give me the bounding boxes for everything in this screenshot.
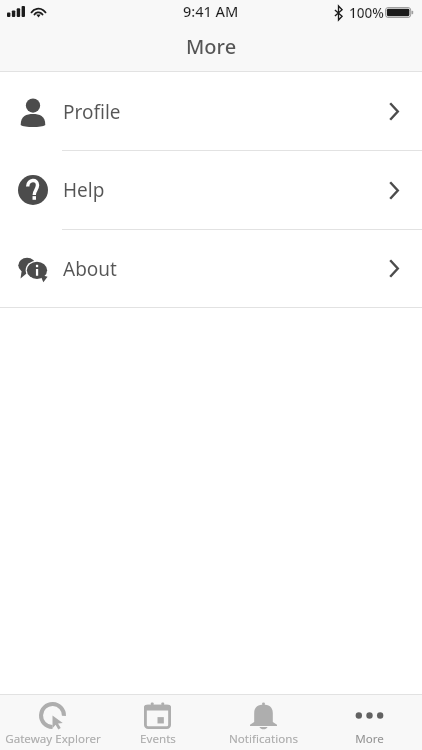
staticText: Gateway Explorer [5, 731, 101, 747]
button[interactable]: Events [105, 695, 210, 750]
staticText: 9:41 AM [183, 1, 239, 21]
staticText: Events [140, 731, 176, 747]
button[interactable]: Help [0, 151, 422, 229]
button[interactable]: More [316, 695, 422, 750]
staticText: More [355, 731, 384, 747]
staticText: About [63, 256, 117, 282]
button[interactable]: Gateway Explorer [0, 695, 105, 750]
button[interactable]: About [0, 229, 422, 308]
button[interactable]: Profile [0, 72, 422, 151]
staticText: Notifications [229, 731, 298, 747]
staticText: Help [63, 177, 105, 203]
staticText: More [186, 33, 237, 60]
staticText: 100% [349, 3, 384, 22]
staticText: Profile [63, 99, 121, 125]
button[interactable]: Notifications [210, 695, 316, 750]
